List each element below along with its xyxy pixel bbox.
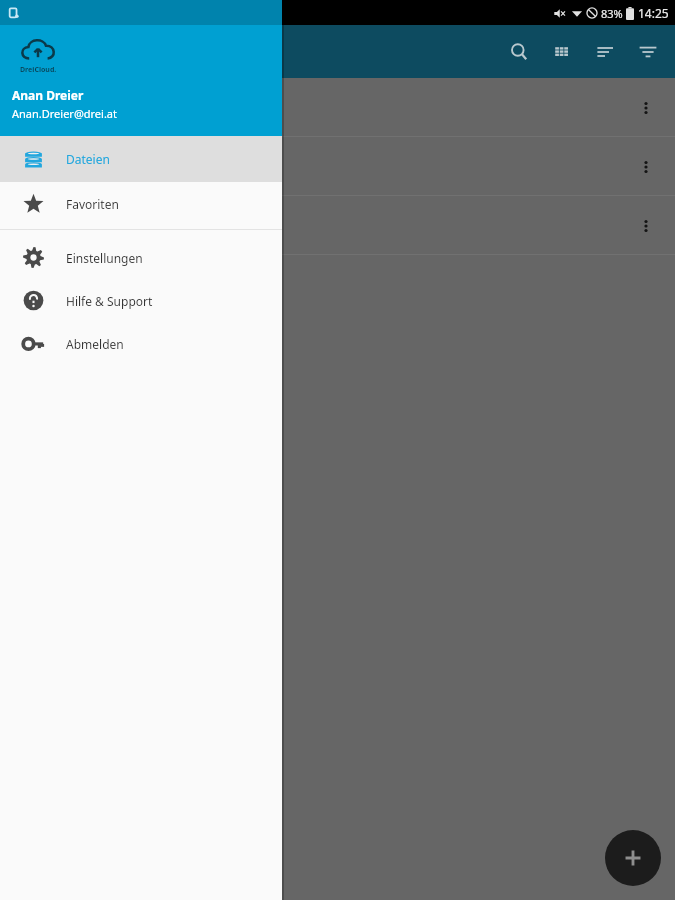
button[interactable]: Hilfe & Support xyxy=(0,279,282,322)
staticText: 83% xyxy=(601,6,623,21)
button[interactable]: Einstellungen xyxy=(0,236,282,279)
staticText: Hilfe & Support xyxy=(66,293,153,309)
staticText: Anan.Dreier@drei.at xyxy=(12,106,117,121)
button[interactable]: More options xyxy=(629,150,663,184)
button[interactable]: More options xyxy=(282,78,675,137)
button[interactable]: Filter xyxy=(626,30,669,74)
staticText: Favoriten xyxy=(66,196,119,212)
button[interactable]: More options xyxy=(282,137,675,196)
button[interactable]: Search xyxy=(497,30,540,74)
button[interactable]: More options xyxy=(629,91,663,125)
staticText: 14:25 xyxy=(638,5,669,21)
button[interactable]: Grid view xyxy=(540,30,583,74)
button[interactable]: Abmelden xyxy=(0,322,282,365)
button[interactable]: More options xyxy=(629,209,663,243)
button[interactable]: Dateien xyxy=(0,136,282,182)
button[interactable]: DreiCloud. xyxy=(0,25,282,136)
staticText: Einstellungen xyxy=(66,250,143,266)
button[interactable]: More options xyxy=(282,196,675,255)
button[interactable]: Add xyxy=(605,830,661,886)
staticText: DreiCloud. xyxy=(20,65,57,75)
button[interactable]: Sort xyxy=(583,30,626,74)
staticText: Abmelden xyxy=(66,336,124,352)
staticText: Anan Dreier xyxy=(12,87,84,103)
staticText: Dateien xyxy=(66,151,110,167)
button[interactable]: Favoriten xyxy=(0,182,282,225)
